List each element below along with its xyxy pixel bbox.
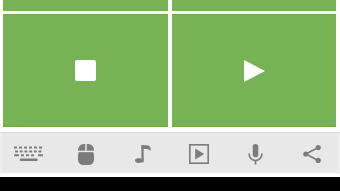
button[interactable]: Share [283, 132, 340, 172]
button[interactable]: Play [172, 14, 336, 127]
button[interactable]: Mouse [56, 132, 112, 172]
button[interactable]: Music [112, 132, 169, 172]
button[interactable]: Video [169, 132, 226, 172]
button[interactable]: Keyboard [0, 132, 56, 172]
button[interactable]: Voice input [226, 132, 283, 172]
button[interactable]: Stop [3, 14, 168, 127]
